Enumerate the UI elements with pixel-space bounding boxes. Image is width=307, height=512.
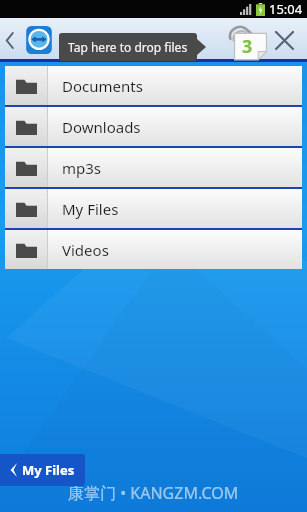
staticText: 康掌门 • KANGZM.COM — [68, 482, 239, 504]
button[interactable]: My Files — [5, 189, 302, 228]
button[interactable]: Downloads — [5, 107, 302, 146]
button[interactable]: My Files — [0, 454, 85, 486]
staticText: 15:04 — [269, 0, 303, 18]
button[interactable]: mp3s — [5, 148, 302, 187]
button[interactable]: Close — [269, 25, 299, 55]
button[interactable]: TeamViewer — [20, 21, 58, 59]
staticText: mp3s — [62, 158, 102, 178]
button[interactable]: Files to drop — [227, 23, 269, 63]
staticText: 3 — [242, 34, 253, 59]
staticText: Videos — [62, 240, 109, 260]
staticText: Documents — [62, 76, 143, 96]
button[interactable]: Tap here to drop files — [59, 33, 197, 61]
staticText: My Files — [62, 199, 119, 219]
staticText: Tap here to drop files — [68, 39, 188, 55]
staticText: Downloads — [62, 117, 141, 137]
button[interactable]: Documents — [5, 66, 302, 105]
staticText: Desktop — [58, 28, 117, 48]
staticText: My Files — [22, 461, 75, 479]
button[interactable]: Back — [0, 20, 20, 60]
button[interactable]: Videos — [5, 230, 302, 269]
